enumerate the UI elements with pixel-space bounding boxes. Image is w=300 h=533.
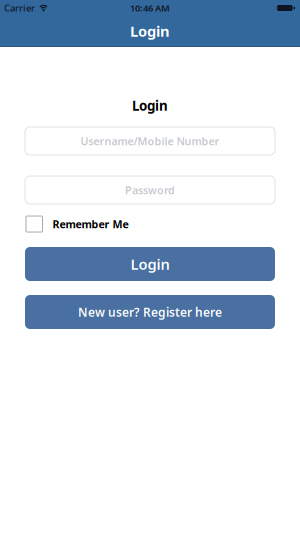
button[interactable]: Login <box>25 247 275 281</box>
staticText: Login <box>130 254 169 274</box>
staticText: Password <box>125 183 175 197</box>
staticText: Username/Mobile Number <box>80 134 219 148</box>
staticText: Remember Me <box>52 217 128 231</box>
staticText: New user? Register here <box>78 304 222 320</box>
staticText: Carrier <box>4 2 35 14</box>
staticText: Login <box>132 97 168 114</box>
button[interactable]: Username/Mobile Number <box>25 127 275 155</box>
staticText: Login <box>130 21 170 41</box>
button[interactable]: New user? Register here <box>25 295 275 329</box>
button[interactable]: Password <box>25 176 275 204</box>
staticText: 10:46 AM <box>130 2 170 14</box>
button[interactable]: Remember Me <box>26 216 128 232</box>
